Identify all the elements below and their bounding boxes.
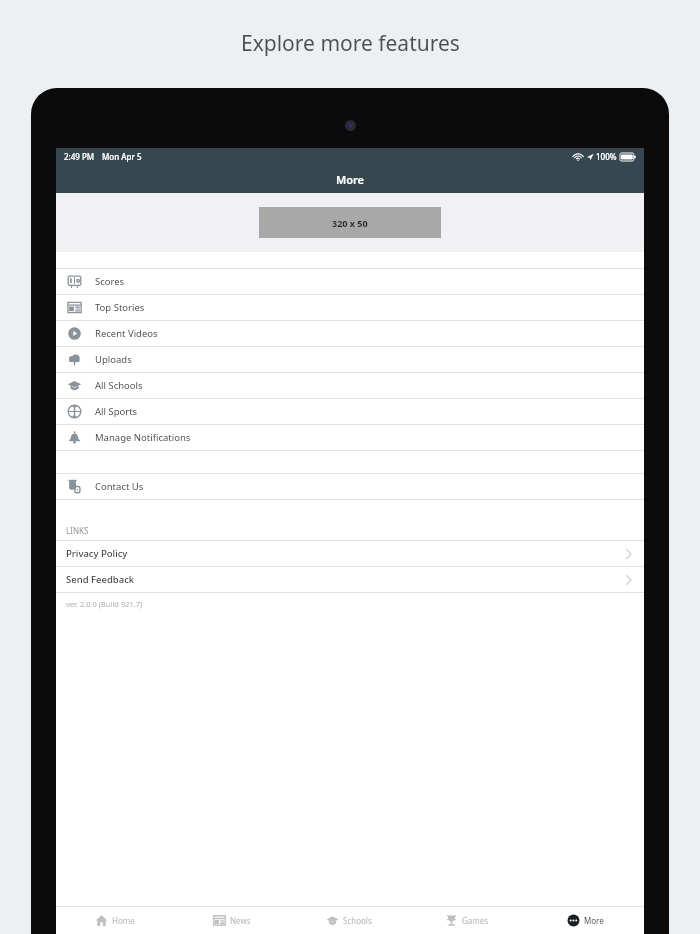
staticText: Games [462, 915, 489, 926]
button[interactable]: Privacy Policy [56, 541, 644, 566]
button[interactable]: Uploads [56, 347, 644, 372]
button[interactable]: More [526, 907, 644, 934]
button[interactable]: All Sports [56, 399, 644, 424]
staticText: Send Feedback [66, 573, 135, 586]
button[interactable]: News [173, 907, 290, 934]
button[interactable]: Recent Videos [56, 321, 644, 346]
staticText: Home [112, 915, 135, 926]
staticText: Scores [95, 275, 125, 288]
staticText: 320 x 50 [332, 217, 368, 229]
staticText: Explore more features [241, 29, 460, 58]
button[interactable]: Manage Notifications [56, 425, 644, 450]
button[interactable]: Contact Us [56, 474, 644, 499]
staticText: Mon Apr 5 [102, 151, 142, 162]
staticText: Contact Us [95, 480, 144, 493]
staticText: Top Stories [95, 301, 145, 314]
button[interactable]: Games [408, 907, 526, 934]
staticText: 2:49 PM [64, 151, 95, 162]
staticText: All Sports [95, 405, 138, 418]
staticText: Recent Videos [95, 327, 158, 340]
button[interactable]: Send Feedback [56, 567, 644, 592]
staticText: Uploads [95, 353, 132, 366]
button[interactable]: Home [56, 907, 173, 934]
button[interactable]: Top Stories [56, 295, 644, 320]
button[interactable]: Schools [290, 907, 408, 934]
staticText: All Schools [95, 379, 143, 392]
staticText: LINKS [66, 525, 89, 536]
staticText: Manage Notifications [95, 431, 191, 444]
staticText: More [584, 915, 604, 926]
staticText: News [230, 915, 251, 926]
staticText: Privacy Policy [66, 547, 128, 560]
staticText: More [336, 172, 364, 187]
staticText: Schools [343, 915, 372, 926]
button[interactable]: All Schools [56, 373, 644, 398]
staticText: ver. 2.0.0 (Build 921.7) [66, 599, 143, 609]
button[interactable]: Scores [56, 269, 644, 294]
staticText: 100% [596, 151, 617, 162]
